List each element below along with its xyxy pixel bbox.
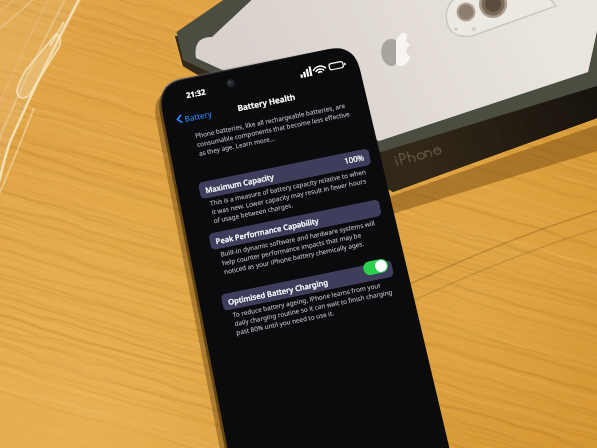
staticText: 100% [343, 152, 365, 167]
button[interactable]: Optimised Battery Charging [220, 260, 394, 311]
staticText: Peak Performance Capability [215, 215, 320, 246]
staticText: Battery [184, 108, 213, 124]
staticText: Optimised Battery Charging [227, 277, 329, 307]
staticText: 21:32 [185, 86, 207, 100]
button[interactable]: Battery [175, 106, 213, 127]
staticText: To reduce battery ageing, iPhone learns … [232, 278, 397, 337]
staticText: Battery Health [236, 91, 296, 113]
button[interactable]: Maximum Capacity [198, 148, 372, 199]
staticText: Maximum Capacity [204, 172, 275, 195]
staticText: This is a measure of battery capacity re… [209, 166, 374, 225]
button[interactable]: Optimised Battery Charging toggle [362, 258, 389, 276]
staticText: Built-in dynamic software and hardware s… [219, 217, 385, 276]
button[interactable]: Peak Performance Capability [208, 199, 382, 250]
staticText: Phone batteries, like all rechargeable b… [194, 99, 359, 158]
